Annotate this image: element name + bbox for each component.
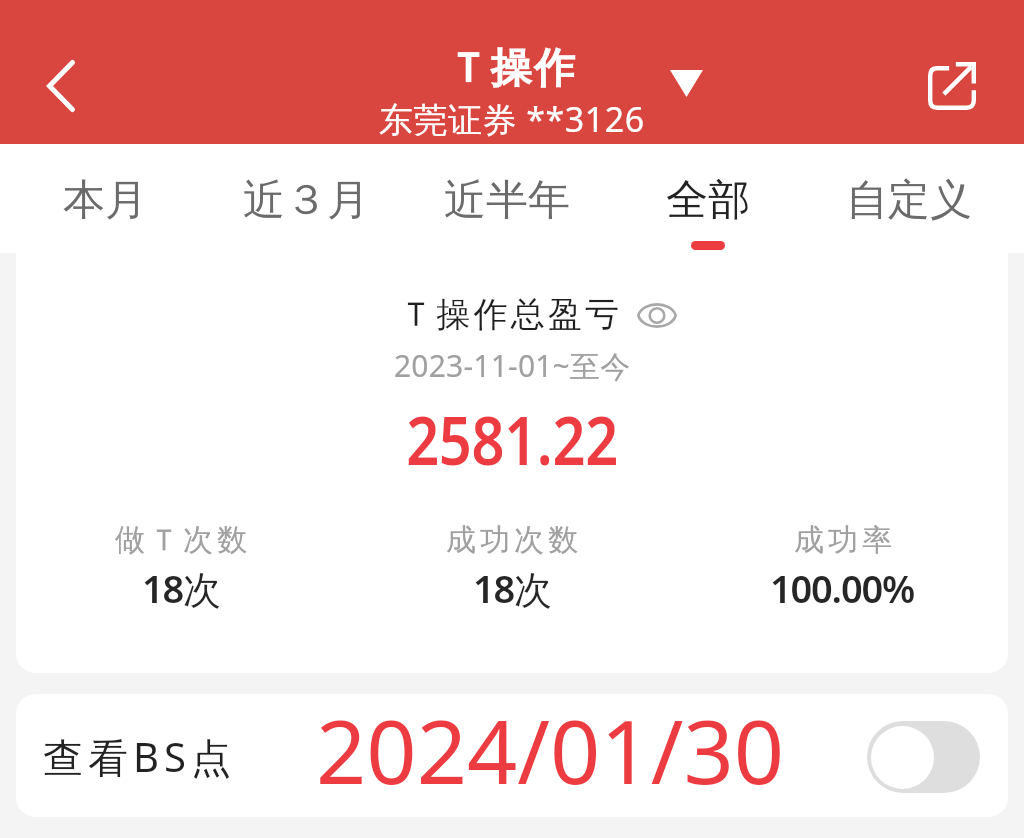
staticText: 18次 — [142, 562, 220, 614]
staticText: Ｔ操作总盈亏 — [399, 293, 623, 336]
staticText: 100.00% — [770, 562, 915, 614]
staticText: 2581.22 — [406, 394, 618, 484]
button[interactable]: Back — [12, 42, 100, 130]
staticText: 成功次数 — [444, 521, 580, 559]
button[interactable]: Toggle amount visibility — [626, 292, 688, 338]
staticText: Ｔ操作 — [447, 43, 578, 95]
staticText: 18次 — [473, 562, 551, 614]
staticText: 2023-11-01~至今 — [394, 345, 631, 386]
button[interactable]: Switch account — [650, 50, 722, 114]
button[interactable]: 本月 — [5, 144, 205, 253]
button[interactable]: 全部 — [607, 144, 808, 253]
staticText: 东莞证券 **3126 — [379, 96, 645, 142]
button[interactable]: 自定义 — [808, 144, 1009, 253]
staticText: 自定义 — [846, 174, 972, 227]
button[interactable]: Share — [912, 44, 992, 128]
staticText: 查看BS点 — [43, 729, 236, 784]
button[interactable]: 近半年 — [406, 144, 607, 253]
staticText: 2024/01/30 — [316, 694, 785, 810]
staticText: 近半年 — [444, 174, 570, 227]
staticText: 近３月 — [243, 174, 369, 227]
button[interactable]: Show BS points — [867, 721, 980, 793]
staticText: 成功率 — [792, 521, 894, 559]
staticText: 做Ｔ次数 — [113, 521, 249, 559]
button[interactable]: 近３月 — [205, 144, 406, 253]
staticText: 全部 — [666, 174, 750, 227]
staticText: 本月 — [63, 174, 147, 227]
